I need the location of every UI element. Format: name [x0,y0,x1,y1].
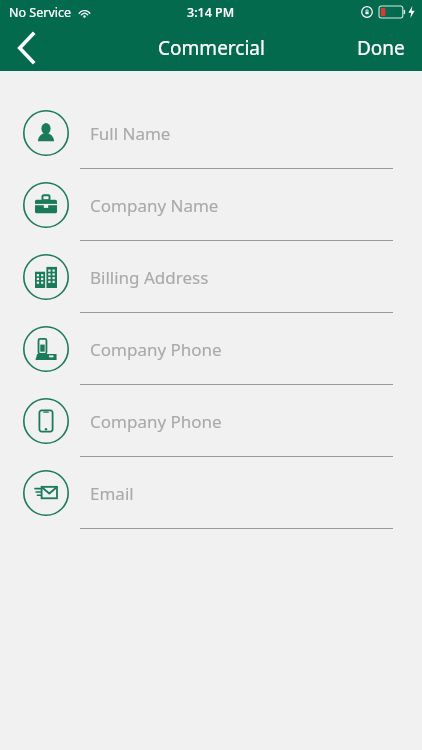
button[interactable]: Done [340,24,422,71]
staticText: Full Name [90,122,171,145]
staticText: Done [357,35,405,61]
button[interactable]: Company Phone [0,313,422,385]
button[interactable]: Back [0,24,52,71]
staticText: No Service [9,4,72,21]
button[interactable]: Email [0,457,422,529]
button[interactable]: Full Name [0,97,422,169]
staticText: Commercial [158,35,265,61]
staticText: Billing Address [90,266,209,289]
staticText: Email [90,482,134,505]
button[interactable]: Billing Address [0,241,422,313]
staticText: Company Phone [90,410,222,433]
staticText: 3:14 PM [187,4,235,21]
staticText: Company Name [90,194,219,217]
button[interactable]: Company Phone [0,385,422,457]
button[interactable]: Company Name [0,169,422,241]
staticText: Company Phone [90,338,222,361]
